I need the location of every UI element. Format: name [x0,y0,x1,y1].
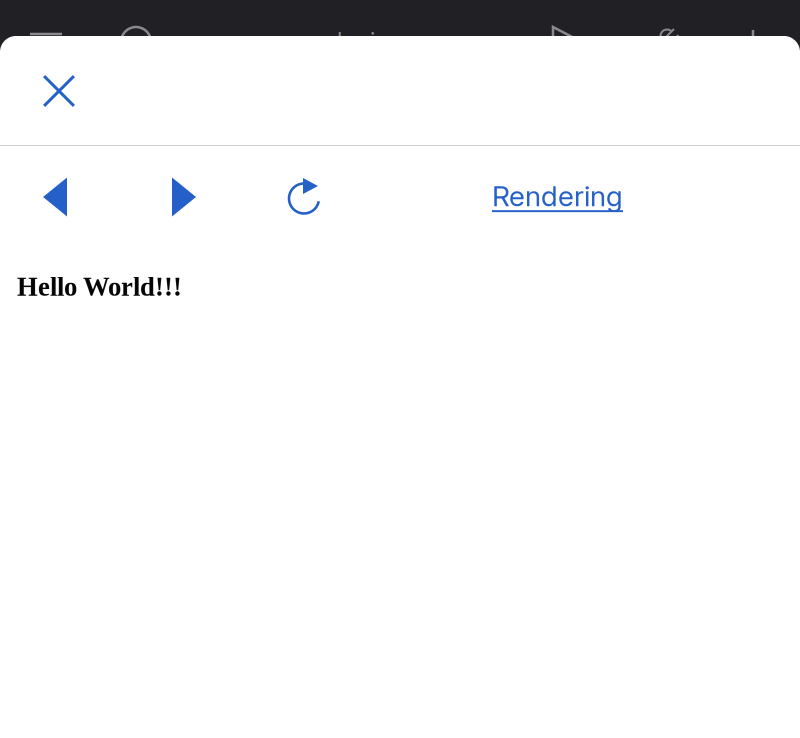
staticText: web viewer [306,27,427,54]
staticText: Hello World!!! [17,272,182,301]
button[interactable]: Forward [144,165,224,229]
button[interactable]: Rendering [492,164,623,228]
button[interactable]: Reload [265,164,345,228]
button[interactable]: Back [15,165,95,229]
button[interactable]: Close [27,59,91,123]
staticText: Rendering [492,179,623,213]
